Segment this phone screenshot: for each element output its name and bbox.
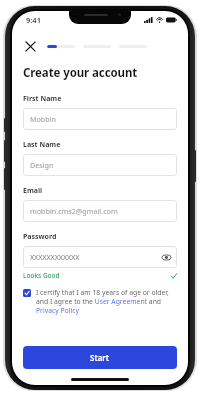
button[interactable]: I certify that I am 18 years of age or o…: [23, 288, 177, 315]
staticText: Password: [23, 232, 57, 242]
button[interactable]: Start: [23, 346, 177, 369]
staticText: I certify that I am 18 years of age or o…: [36, 288, 177, 315]
staticText: 9:41: [26, 15, 41, 25]
staticText: Start: [90, 352, 110, 363]
staticText: XXXXXXXXXXXX: [30, 252, 80, 262]
staticText: Last Name: [23, 140, 61, 150]
button[interactable]: Close: [22, 38, 38, 54]
button[interactable]: mobbin.cms2@gmail.com: [23, 200, 177, 222]
staticText: Create your account: [23, 65, 138, 81]
staticText: First Name: [23, 94, 62, 104]
button[interactable]: Design: [23, 154, 177, 176]
staticText: Looks Good: [23, 271, 60, 280]
staticText: mobbin.cms2@gmail.com: [30, 206, 118, 216]
button[interactable]: Mobbin: [23, 108, 177, 130]
staticText: Email: [23, 186, 43, 196]
staticText: Mobbin: [30, 114, 57, 124]
staticText: Design: [30, 160, 54, 170]
button[interactable]: XXXXXXXXXXXX: [23, 246, 177, 268]
button[interactable]: Step progress: [47, 45, 75, 48]
button[interactable]: Show password: [160, 251, 172, 263]
